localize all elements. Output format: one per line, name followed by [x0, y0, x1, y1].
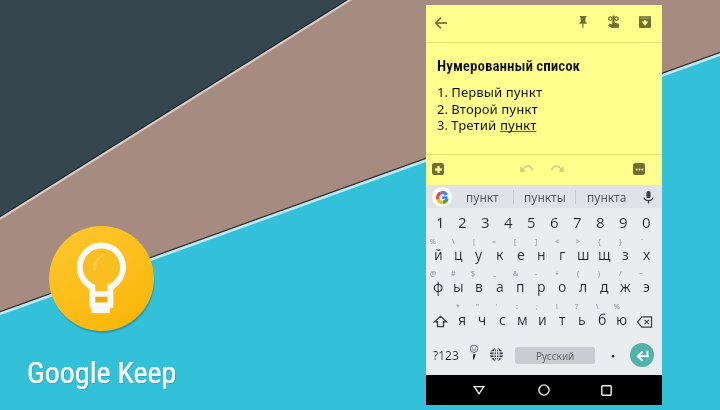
staticText: т	[559, 310, 566, 329]
staticText: ю	[616, 310, 628, 329]
button[interactable]: Русский	[515, 347, 595, 364]
button[interactable]: =	[489, 240, 510, 272]
button[interactable]: {	[594, 240, 615, 272]
button[interactable]: -	[531, 272, 552, 305]
button[interactable]: _	[489, 272, 510, 305]
button[interactable]: Redo	[547, 160, 567, 180]
button[interactable]: Emoji	[463, 338, 484, 371]
button[interactable]: `	[636, 240, 657, 272]
button[interactable]: @	[428, 272, 448, 305]
button[interactable]: 5	[520, 208, 543, 240]
button[interactable]: Back	[469, 380, 489, 400]
button[interactable]: $	[468, 272, 489, 305]
button[interactable]: \	[448, 240, 468, 272]
staticText: 9	[619, 212, 628, 232]
button[interactable]: :	[512, 305, 532, 338]
staticText: 1. Первый пункт	[437, 83, 543, 101]
staticText: ]	[535, 237, 538, 247]
staticText: (	[577, 269, 580, 279]
staticText: ~	[639, 269, 644, 279]
button[interactable]: 8	[589, 208, 612, 240]
button[interactable]: \	[592, 305, 612, 338]
button[interactable]: #	[448, 272, 468, 305]
button[interactable]: '	[492, 305, 512, 338]
button[interactable]: More options	[633, 163, 645, 175]
button[interactable]: }	[615, 240, 636, 272]
staticText: г	[559, 245, 566, 264]
button[interactable]: ?123	[429, 338, 462, 371]
button[interactable]: Back	[427, 9, 454, 36]
staticText: 4	[504, 212, 513, 232]
staticText: ?123	[433, 347, 459, 363]
button[interactable]: 4	[497, 208, 520, 240]
button[interactable]: Voice input	[637, 186, 659, 208]
staticText: "	[476, 302, 479, 312]
staticText: Google Keep	[27, 355, 177, 390]
staticText: з	[622, 245, 629, 264]
button[interactable]: Add	[432, 163, 444, 175]
button[interactable]: 9	[612, 208, 635, 240]
staticText: д	[600, 277, 609, 296]
button[interactable]: /	[615, 272, 636, 305]
button[interactable]: 7	[566, 208, 589, 240]
button[interactable]: *	[453, 305, 472, 338]
button[interactable]: пункт	[452, 185, 513, 208]
button[interactable]: Recent apps	[596, 380, 616, 400]
staticText: <	[555, 237, 560, 247]
button[interactable]: пункты	[514, 185, 575, 208]
button[interactable]: +	[552, 272, 573, 305]
staticText: к	[496, 245, 504, 264]
button[interactable]: "	[472, 305, 492, 338]
button[interactable]: пункта	[576, 185, 637, 208]
button[interactable]: )	[594, 272, 615, 305]
button[interactable]: Archive	[632, 9, 657, 34]
button[interactable]: %	[428, 240, 448, 272]
button[interactable]: Google search	[432, 187, 452, 207]
staticText: ш	[577, 245, 590, 264]
button[interactable]: Change language	[486, 338, 507, 371]
staticText: пункты	[524, 189, 566, 205]
staticText: *	[456, 302, 460, 312]
button[interactable]: ~	[636, 272, 657, 305]
button[interactable]: ]	[531, 240, 552, 272]
staticText: щ	[598, 245, 611, 264]
button[interactable]: Undo	[516, 160, 536, 180]
staticText: р	[537, 277, 546, 296]
button[interactable]: >	[573, 240, 594, 272]
staticText: 7	[573, 212, 582, 232]
staticText: {	[598, 237, 601, 247]
staticText: +	[555, 269, 560, 279]
button[interactable]: Backspace	[632, 305, 657, 338]
staticText: о	[558, 277, 567, 296]
button[interactable]: Home	[534, 380, 554, 400]
button[interactable]: Reminder	[601, 9, 626, 34]
staticText: Русский	[536, 349, 575, 363]
button[interactable]: Period	[602, 338, 623, 371]
staticText: #	[451, 269, 456, 279]
button[interactable]: (	[573, 272, 594, 305]
button[interactable]: [	[510, 240, 531, 272]
staticText: и	[538, 310, 547, 329]
button[interactable]: ?	[572, 305, 592, 338]
button[interactable]: 3	[474, 208, 497, 240]
button[interactable]: Pin note	[570, 9, 595, 34]
staticText: 2. Второй пункт	[437, 100, 538, 118]
button[interactable]: ;	[532, 305, 552, 338]
button[interactable]: %	[612, 305, 632, 338]
button[interactable]: Shift	[428, 305, 453, 338]
staticText: ф	[433, 277, 444, 296]
button[interactable]: 0	[635, 208, 658, 240]
button[interactable]: !	[552, 305, 572, 338]
button[interactable]: Enter	[630, 343, 654, 367]
button[interactable]: 1	[429, 208, 451, 240]
staticText: м	[517, 310, 528, 329]
button[interactable]: 2	[451, 208, 474, 240]
button[interactable]: &	[510, 272, 531, 305]
staticText: э	[643, 277, 650, 296]
staticText: б	[598, 310, 607, 329]
button[interactable]: <	[552, 240, 573, 272]
staticText: 6	[550, 212, 559, 232]
button[interactable]: 6	[543, 208, 566, 240]
button[interactable]: |	[468, 240, 489, 272]
staticText: @	[430, 269, 437, 279]
